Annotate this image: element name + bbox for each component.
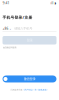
staticText: 短信验证码登录 [2,46,16,49]
staticText: +86 [2,26,8,31]
staticText: 登录 [26,38,32,42]
button[interactable]: +86 [2,26,11,31]
staticText: 9:41 [2,1,9,5]
button[interactable]: 微信登录 [2,75,56,82]
staticText: 请输入手机号 [14,26,32,30]
button[interactable]: 已阅读并同意 [10,88,48,91]
staticText: ıll ◗ [50,1,56,5]
staticText: 手机号登录/注册 [2,15,32,20]
staticText: 微信登录 [23,77,35,81]
staticText: 《用户协议》和《隐私政策》 [22,88,48,91]
button[interactable]: 登录 [2,36,56,44]
staticText: 已阅读并同意 [10,88,22,91]
staticText: ⌄ [9,27,11,30]
button[interactable]: 短信验证码登录 [2,46,16,49]
